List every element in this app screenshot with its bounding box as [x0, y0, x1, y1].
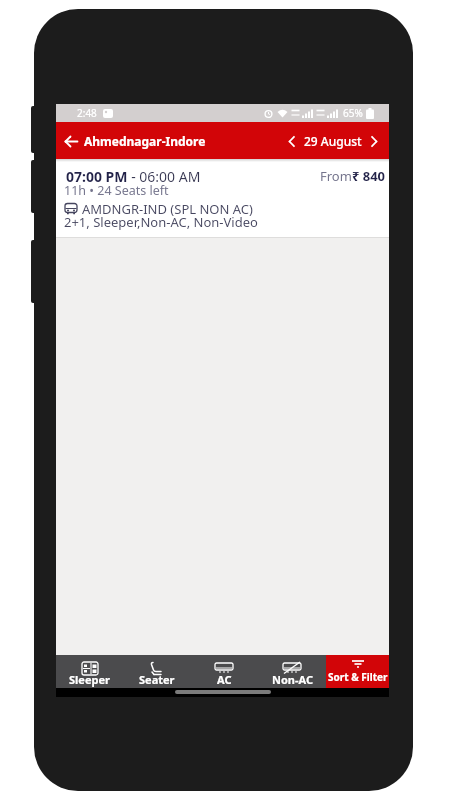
- staticText: 65%: [343, 106, 363, 120]
- button[interactable]: Sleeper: [56, 655, 123, 688]
- button[interactable]: AC: [190, 655, 258, 688]
- staticText: Sort & Filter: [328, 670, 388, 684]
- staticText: 11h • 24 Seats left: [64, 182, 169, 199]
- staticText: From₹ 840: [320, 167, 386, 185]
- staticText: AC: [217, 672, 232, 687]
- staticText: Ahmednagar-Indore: [84, 133, 206, 149]
- staticText: 2+1, Sleeper,Non-AC, Non-Video: [64, 213, 258, 231]
- staticText: 07:00 PM - 06:00 AM: [66, 167, 201, 186]
- staticText: Non-AC: [272, 672, 313, 687]
- button[interactable]: 07:00 PM - 06:00 AM: [56, 159, 389, 237]
- staticText: Sleeper: [69, 672, 110, 687]
- staticText: 29 August: [304, 133, 362, 149]
- button[interactable]: [62, 132, 80, 150]
- staticText: Seater: [139, 672, 175, 687]
- staticText: AMDNGR-IND (SPL NON AC): [82, 200, 253, 218]
- button[interactable]: Sort & Filter: [326, 655, 389, 688]
- button[interactable]: 29 August: [288, 133, 378, 149]
- button[interactable]: Seater: [123, 655, 190, 688]
- button[interactable]: Non-AC: [258, 655, 326, 688]
- staticText: 2:48: [77, 106, 97, 120]
